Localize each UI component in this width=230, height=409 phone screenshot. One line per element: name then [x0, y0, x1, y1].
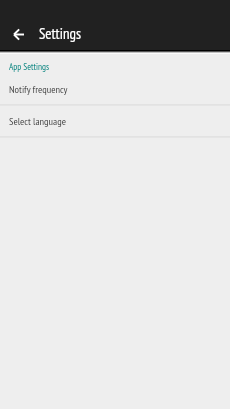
button[interactable]: Notify frequency: [0, 73, 230, 105]
button[interactable]: Select language: [0, 105, 230, 137]
staticText: Settings: [39, 24, 81, 43]
button[interactable]: Navigate up: [6, 22, 30, 46]
staticText: Notify frequency: [9, 82, 68, 95]
staticText: Select language: [9, 114, 66, 127]
staticText: App Settings: [9, 61, 50, 73]
